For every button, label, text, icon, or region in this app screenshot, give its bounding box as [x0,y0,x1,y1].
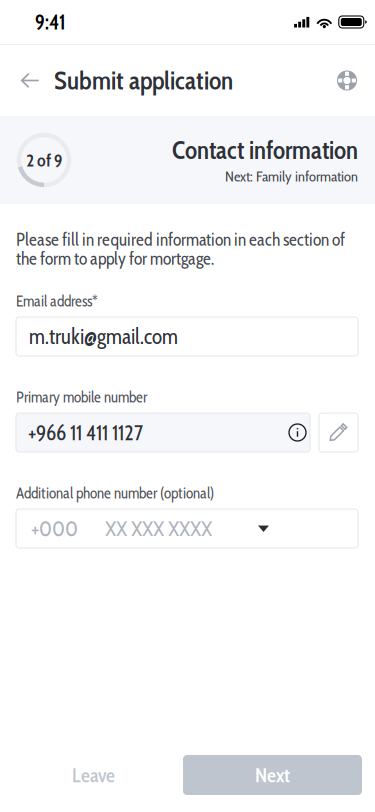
staticText: m.truki@gmail.com [29,324,178,349]
staticText: Next: Family information [225,167,358,185]
button[interactable]: Edit [319,413,358,452]
button[interactable]: Leave [12,755,175,795]
staticText: Submit application [54,65,233,96]
staticText: Leave [72,763,115,787]
button[interactable]: Next [183,755,362,795]
staticText: the form to apply for mortgage. [16,248,214,269]
staticText: XX XXX XXXX [105,515,212,541]
staticText: 9:41 [35,9,66,34]
staticText: Contact information [172,135,358,165]
button[interactable]: Back [11,52,49,108]
button[interactable]: Help [328,52,366,108]
staticText: 2 of 9 [26,149,62,171]
staticText: Please fill in required information in e… [16,229,345,250]
staticText: Primary mobile number [16,388,147,406]
staticText: +966 11 411 1127 [28,419,143,445]
button[interactable]: +000 [16,509,358,548]
staticText: Email address* [16,292,98,310]
staticText: +000 [31,515,78,541]
staticText: Additional phone number (optional) [16,484,214,502]
staticText: Next [255,763,290,787]
